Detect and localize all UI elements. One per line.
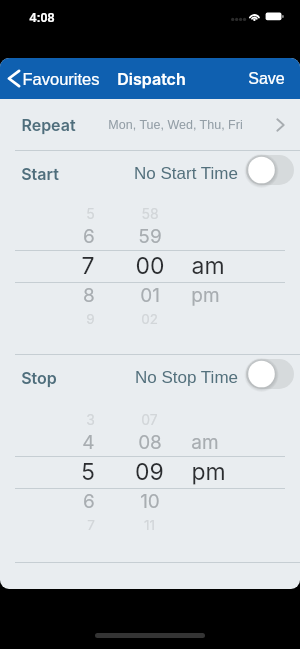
staticText: No Stop Time — [135, 368, 238, 387]
staticText: Stop — [21, 368, 57, 387]
staticText: pm — [191, 458, 226, 486]
staticText: Save — [248, 70, 285, 88]
staticText: 4:08 — [29, 11, 55, 25]
staticText: 6 — [83, 225, 95, 248]
button[interactable]: Start — [0, 150, 300, 197]
staticText: 58 — [141, 205, 159, 222]
button[interactable]: Save — [236, 58, 300, 99]
staticText: 10 — [140, 490, 160, 513]
staticText: 09 — [135, 458, 164, 486]
staticText: 4 — [82, 431, 95, 454]
button[interactable]: Toggle Stop — [246, 359, 294, 389]
button[interactable]: Stop — [0, 354, 300, 401]
staticText: 7 — [87, 517, 95, 533]
staticText: 7 — [81, 252, 95, 280]
staticText: 3 — [86, 411, 95, 428]
staticText: 00 — [135, 252, 165, 280]
staticText: 01 — [140, 284, 160, 307]
staticText: 11 — [144, 517, 155, 533]
staticText: 9 — [86, 311, 95, 327]
staticText: pm — [191, 284, 220, 307]
staticText: Dispatch — [117, 69, 186, 88]
staticText: 5 — [81, 458, 95, 486]
staticText: No Start Time — [134, 164, 238, 183]
button[interactable]: Favourites — [0, 58, 108, 99]
staticText: Start — [21, 164, 59, 183]
staticText: 59 — [138, 225, 162, 248]
staticText: Favourites — [22, 70, 100, 88]
staticText: am — [191, 252, 225, 280]
staticText: 6 — [83, 490, 95, 513]
staticText: 07 — [141, 411, 158, 428]
button[interactable]: Toggle Start — [246, 155, 294, 185]
staticText: am — [191, 431, 219, 454]
staticText: 8 — [83, 284, 95, 307]
staticText: 02 — [141, 311, 158, 327]
button[interactable]: Repeat — [0, 99, 300, 150]
staticText: 08 — [138, 431, 162, 454]
staticText: 5 — [86, 205, 95, 222]
staticText: Mon, Tue, Wed, Thu, Fri — [108, 118, 243, 132]
staticText: Repeat — [21, 115, 76, 134]
